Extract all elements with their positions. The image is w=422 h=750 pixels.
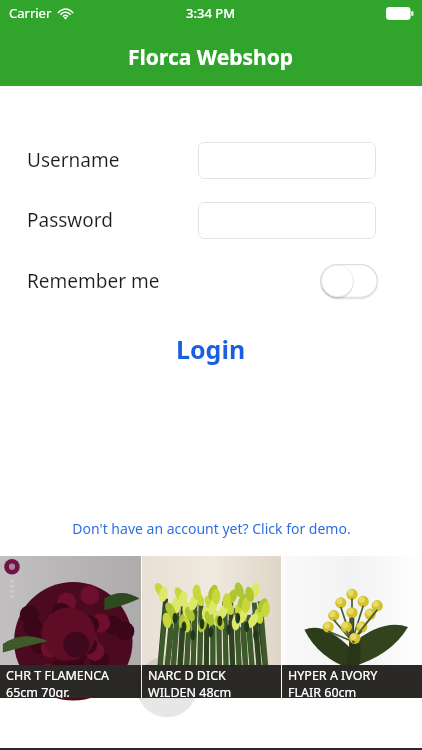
staticText: Don't have an account yet? Click for dem…	[72, 519, 351, 538]
staticText: FLAIR 60cm	[288, 684, 357, 698]
staticText: Florca Webshop	[128, 43, 294, 72]
staticText: Remember me	[27, 268, 160, 294]
staticText: Password	[27, 207, 113, 233]
button[interactable]: Username input field	[198, 142, 376, 179]
staticText: HYPER A IVORY	[288, 667, 378, 684]
button[interactable]: Login	[0, 329, 422, 369]
staticText: 3:34 PM	[186, 4, 236, 22]
staticText: 65cm 70gr.	[6, 684, 70, 698]
staticText: NARC D DICK	[148, 667, 226, 684]
button[interactable]: Remember me toggle, off	[320, 264, 378, 298]
staticText: Username	[27, 147, 120, 173]
staticText: Login	[176, 332, 246, 366]
button[interactable]: Password input field	[198, 202, 376, 239]
button[interactable]: HYPER A IVORY	[282, 556, 422, 698]
button[interactable]: CHR T FLAMENCA	[0, 556, 141, 698]
staticText: WILDEN 48cm	[148, 684, 232, 698]
staticText: CHR T FLAMENCA	[6, 667, 110, 684]
button[interactable]: NARC D DICK	[142, 556, 281, 698]
button[interactable]: Remember me	[0, 259, 422, 303]
staticText: Carrier	[9, 4, 52, 22]
button[interactable]: Don't have an account yet? Click for dem…	[0, 512, 422, 544]
